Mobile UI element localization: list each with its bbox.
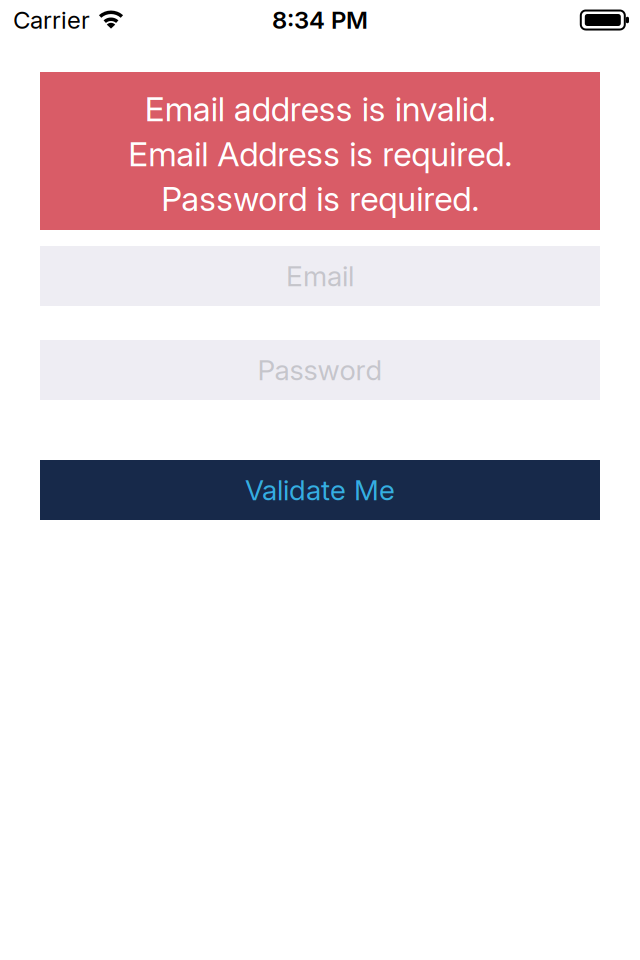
staticText: Carrier — [13, 6, 90, 34]
staticText: Password — [257, 353, 382, 386]
staticText: Email — [286, 259, 354, 292]
staticText: 8:34 PM — [272, 6, 368, 34]
staticText: Validate Me — [245, 473, 395, 506]
staticText: Email address is invalid. Email Address … — [128, 89, 512, 218]
